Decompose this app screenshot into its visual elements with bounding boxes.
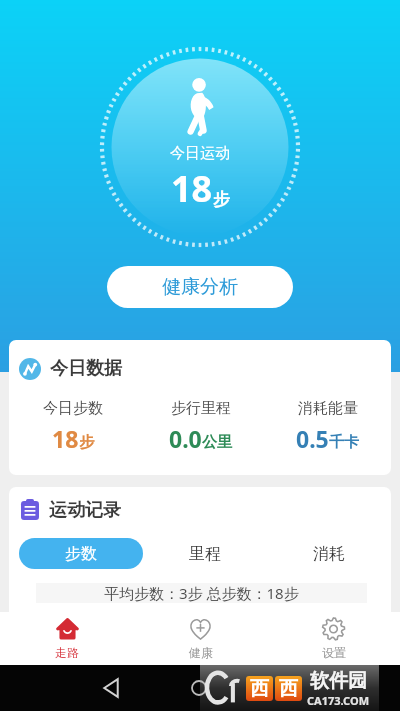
staticText: 健康 [189, 645, 213, 660]
button[interactable]: 步数 [19, 538, 143, 569]
staticText: CA173.COM [307, 693, 370, 708]
staticText: 平均步数：3步 总步数：18步 [104, 583, 299, 603]
button[interactable]: 里程 [143, 538, 267, 569]
staticText: 设置 [322, 645, 346, 660]
staticText: 0.0 [169, 423, 202, 454]
staticText: 今日步数 [43, 399, 103, 418]
button[interactable]: 消耗 [267, 538, 391, 569]
staticText: 健康分析 [162, 275, 238, 299]
staticText: 今日数据 [50, 357, 122, 380]
staticText: 步数 [65, 544, 97, 564]
staticText: 公里 [202, 433, 232, 452]
staticText: 千卡 [329, 433, 359, 452]
staticText: 18 [171, 164, 213, 213]
staticText: 今日运动 [170, 144, 230, 163]
staticText: 西 [279, 677, 298, 701]
staticText: 步 [79, 433, 94, 452]
staticText: 消耗能量 [298, 399, 358, 418]
staticText: 步行里程 [171, 399, 231, 418]
button[interactable]: 健康分析 [107, 266, 293, 308]
button[interactable]: 健康 [134, 612, 267, 665]
staticText: 运动记录 [49, 499, 121, 520]
staticText: 0.5 [296, 423, 329, 454]
button[interactable]: 设置 [267, 612, 400, 665]
staticText: 走路 [55, 645, 79, 660]
staticText: 步 [213, 189, 230, 210]
staticText: 消耗 [313, 544, 345, 564]
staticText: 里程 [189, 544, 221, 564]
other: Home [191, 680, 207, 696]
staticText: 西 [250, 677, 269, 701]
staticText: 软件园 [310, 669, 367, 693]
button[interactable]: 走路 [0, 612, 134, 665]
other: Back [103, 678, 119, 698]
staticText: 18 [52, 423, 79, 454]
